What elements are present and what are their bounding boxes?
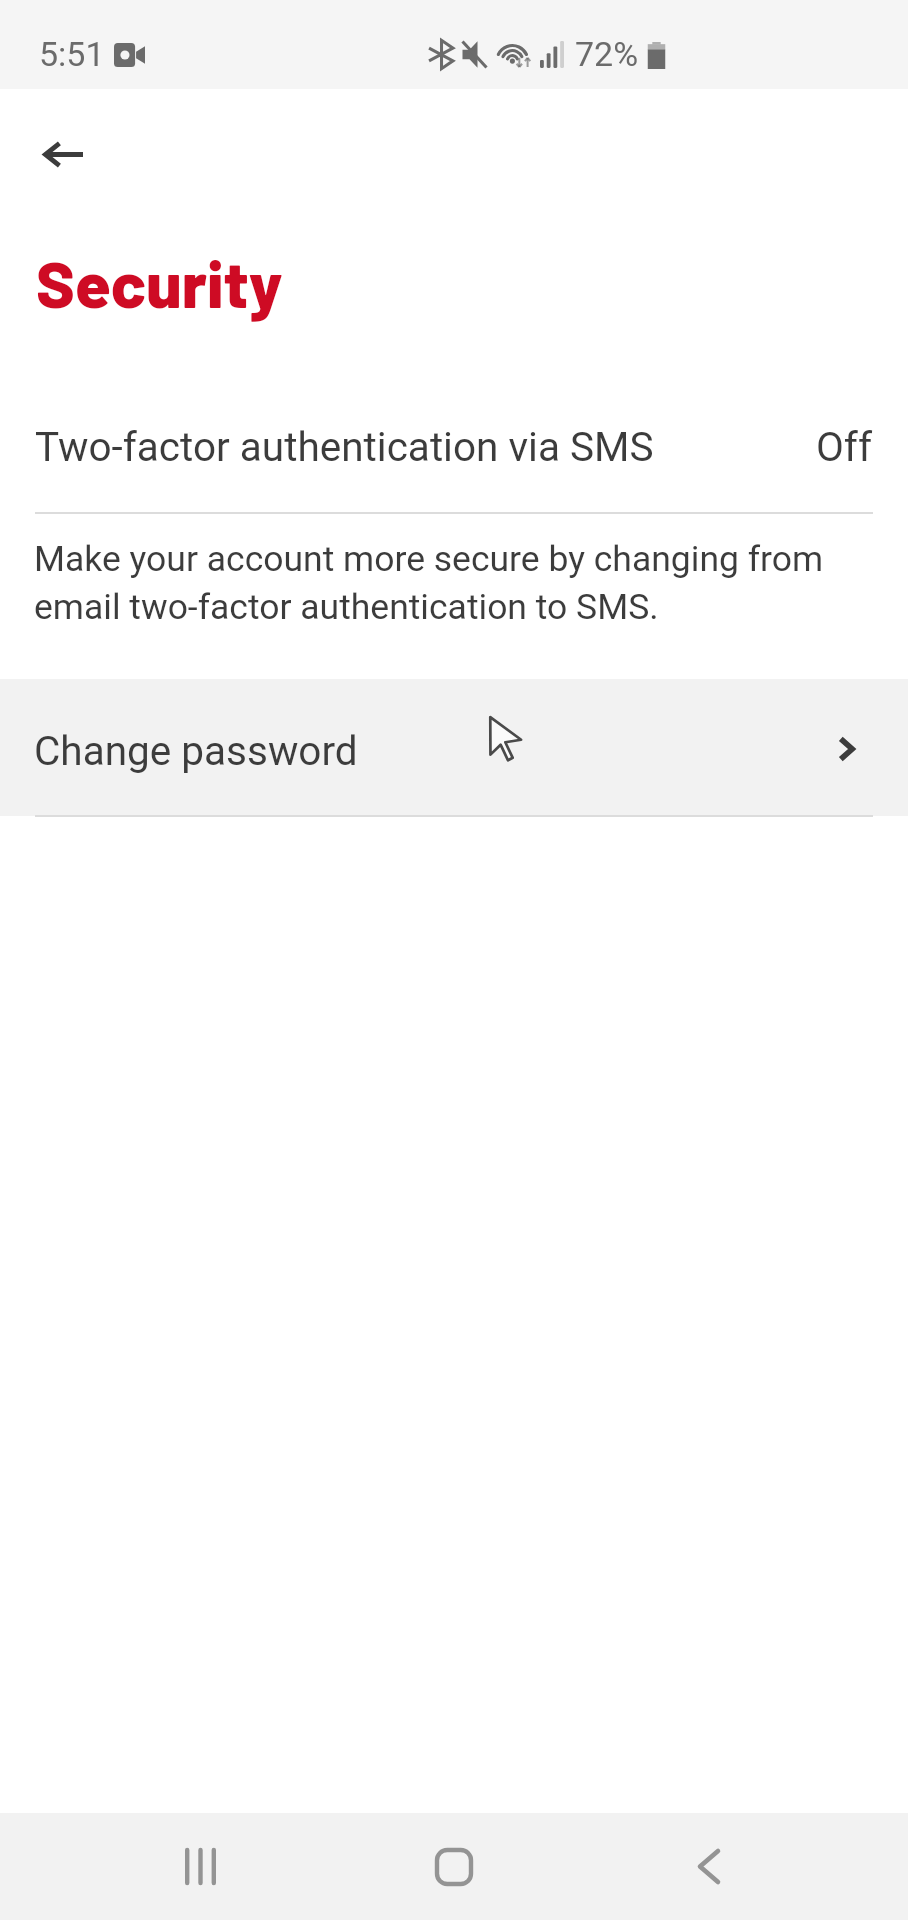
- button[interactable]: Two-factor authentication via SMS: [0, 390, 908, 502]
- button[interactable]: Recent apps: [145, 1813, 255, 1920]
- staticText: Off: [816, 423, 873, 470]
- staticText: Make your account more secure by changin…: [34, 538, 824, 628]
- button[interactable]: Back: [654, 1813, 764, 1920]
- staticText: Change password: [34, 727, 358, 774]
- staticText: Two-factor authentication via SMS: [35, 423, 654, 470]
- button[interactable]: Change password: [0, 679, 908, 816]
- staticText: 72%: [575, 34, 639, 74]
- button[interactable]: Home: [399, 1813, 509, 1920]
- staticText: 5:51: [39, 34, 105, 74]
- staticText: Security: [36, 243, 283, 321]
- button[interactable]: Back: [21, 112, 105, 196]
